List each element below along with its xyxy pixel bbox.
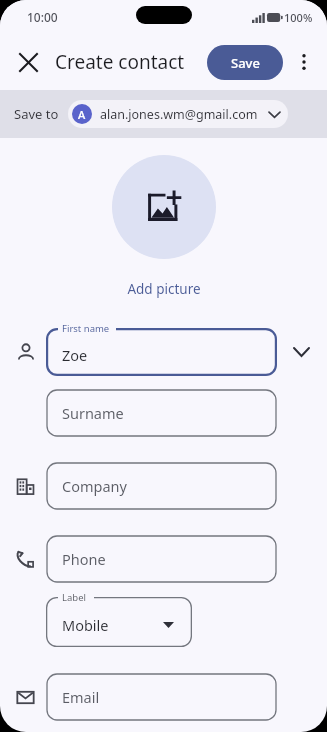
staticText: Company bbox=[62, 476, 127, 496]
button[interactable]: More options bbox=[286, 44, 322, 80]
staticText: Label bbox=[62, 591, 86, 604]
button[interactable]: Close bbox=[8, 42, 48, 82]
staticText: alan.jones.wm@gmail.com bbox=[100, 106, 258, 123]
button[interactable]: Label bbox=[46, 597, 192, 647]
staticText: Save bbox=[231, 54, 260, 72]
staticText: Mobile bbox=[62, 615, 109, 635]
button[interactable]: A bbox=[68, 100, 288, 128]
button[interactable]: Add picture bbox=[112, 155, 216, 259]
button[interactable]: Expand name fields bbox=[286, 337, 316, 367]
button[interactable]: Company bbox=[46, 462, 277, 510]
staticText: Surname bbox=[62, 403, 124, 423]
button[interactable]: Add picture bbox=[127, 280, 201, 298]
staticText: Phone bbox=[62, 549, 106, 569]
button[interactable]: Email bbox=[46, 673, 277, 721]
staticText: Save to bbox=[14, 105, 59, 123]
staticText: Create contact bbox=[55, 49, 185, 75]
button[interactable]: Save bbox=[207, 45, 283, 80]
button[interactable]: Surname bbox=[46, 389, 277, 437]
staticText: A bbox=[78, 107, 86, 122]
staticText: Zoe bbox=[62, 345, 88, 365]
button[interactable]: Phone bbox=[46, 535, 277, 583]
staticText: 10:00 bbox=[27, 9, 58, 25]
button[interactable]: First name bbox=[46, 328, 277, 376]
staticText: First name bbox=[62, 322, 110, 335]
staticText: 100% bbox=[284, 10, 313, 25]
staticText: Email bbox=[62, 687, 100, 707]
